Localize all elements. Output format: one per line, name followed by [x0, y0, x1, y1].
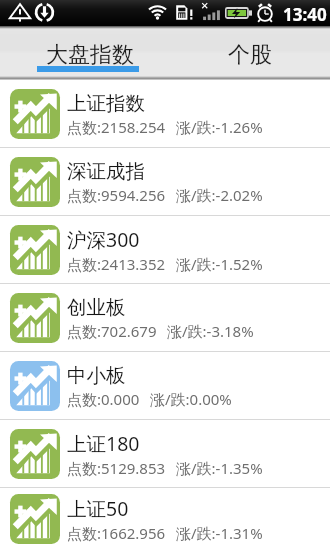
staticText: 涨/跌:-1.35% [176, 458, 263, 478]
staticText: 点数:702.679 [67, 321, 157, 341]
staticText: 涨/跌:-2.02% [176, 185, 263, 205]
button[interactable]: 深证成指 [0, 148, 330, 215]
staticText: 点数:0.000 [67, 389, 140, 409]
button[interactable]: 大盘指数 [0, 26, 165, 54]
staticText: 点数:1662.956 [67, 523, 166, 543]
staticText: 点数:2158.254 [67, 117, 166, 137]
button[interactable]: 上证180 [0, 420, 330, 487]
staticText: 大盘指数 [46, 41, 134, 69]
staticText: 深证成指 [67, 159, 145, 184]
staticText: 上证180 [67, 430, 140, 457]
staticText: 13:40 [283, 3, 327, 26]
button[interactable]: 上证指数 [0, 80, 330, 147]
button[interactable]: 创业板 [0, 284, 330, 351]
staticText: 点数:5129.853 [67, 458, 166, 478]
staticText: 中小板 [67, 363, 126, 388]
staticText: 涨/跌:-1.26% [176, 117, 263, 137]
button[interactable]: 沪深300 [0, 216, 330, 283]
staticText: 创业板 [67, 295, 126, 320]
button[interactable]: 中小板 [0, 352, 330, 419]
staticText: 涨/跌:-1.52% [176, 254, 263, 274]
button[interactable]: 上证50 [0, 488, 330, 550]
button[interactable]: 个股 [165, 26, 330, 54]
staticText: 点数:9594.256 [67, 185, 166, 205]
staticText: 上证指数 [67, 91, 145, 116]
staticText: 沪深300 [67, 226, 140, 253]
staticText: 个股 [228, 41, 272, 69]
staticText: 涨/跌:-1.31% [176, 523, 263, 543]
staticText: 上证50 [67, 495, 129, 522]
staticText: 点数:2413.352 [67, 254, 166, 274]
staticText: 涨/跌:-3.18% [167, 321, 254, 341]
staticText: 涨/跌:0.00% [150, 389, 232, 409]
